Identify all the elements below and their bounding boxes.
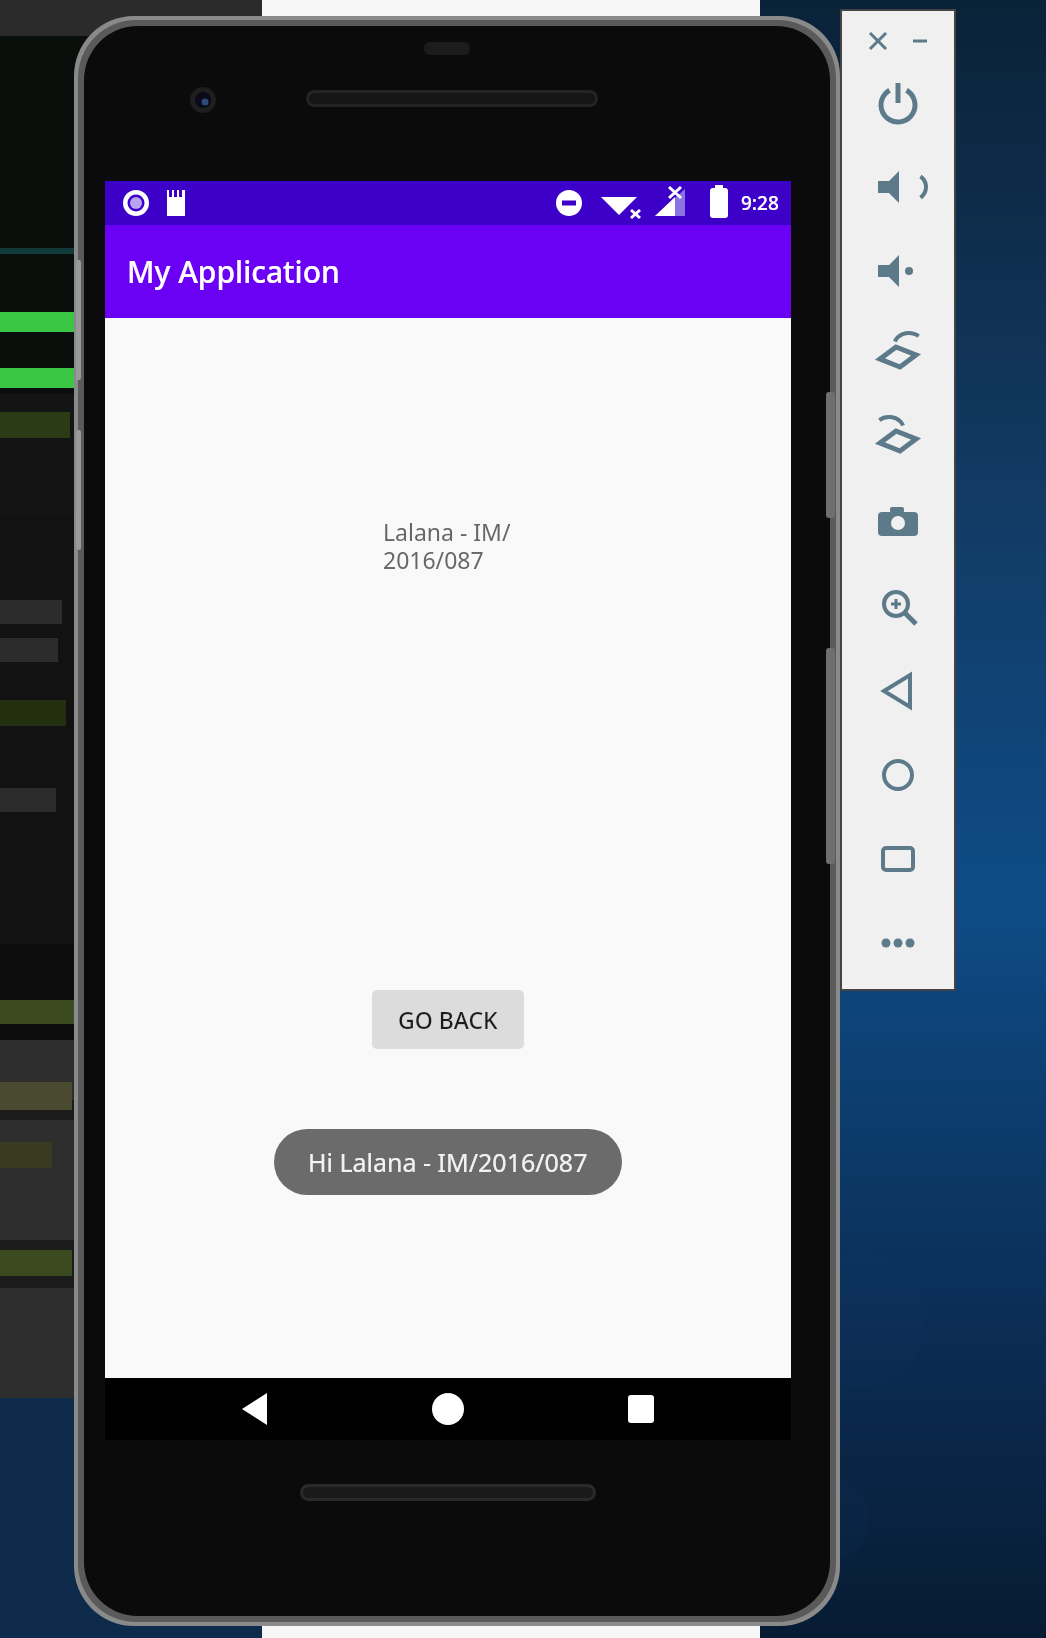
- button[interactable]: Take screenshot: [873, 498, 923, 548]
- button[interactable]: Back: [227, 1381, 283, 1437]
- button[interactable]: More: [873, 918, 923, 968]
- button[interactable]: Home: [873, 750, 923, 800]
- button[interactable]: Recent apps: [873, 834, 923, 884]
- button[interactable]: Rotate right: [873, 414, 923, 464]
- button[interactable]: Recent apps: [613, 1381, 669, 1437]
- button[interactable]: Back: [873, 666, 923, 716]
- button[interactable]: Volume up: [873, 162, 923, 212]
- staticText: Lalana - IM/2016/087: [383, 516, 513, 576]
- button[interactable]: Close: [861, 24, 895, 58]
- staticText: GO BACK: [398, 1004, 498, 1035]
- button[interactable]: Rotate left: [873, 330, 923, 380]
- button[interactable]: Minimize: [903, 24, 937, 58]
- staticText: 9:28: [741, 190, 779, 216]
- button[interactable]: Home: [420, 1381, 476, 1437]
- button[interactable]: GO BACK: [372, 990, 524, 1049]
- button[interactable]: Power: [873, 78, 923, 128]
- button[interactable]: Zoom: [873, 582, 923, 632]
- staticText: My Application: [127, 251, 340, 292]
- staticText: Hi Lalana - IM/2016/087: [308, 1145, 588, 1179]
- button[interactable]: Volume down: [873, 246, 923, 296]
